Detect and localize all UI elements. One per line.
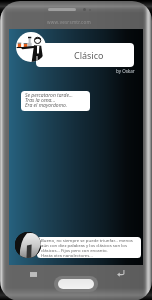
staticText: Bueno, no siempre se puede triunfar... m… <box>41 237 133 258</box>
button[interactable]: Author avatar <box>15 232 41 258</box>
staticText: Se percataron tarde... Tras la cena... E… <box>25 92 73 109</box>
button[interactable]: Recent apps <box>26 267 40 281</box>
button[interactable]: Clásico <box>36 43 134 67</box>
button[interactable]: Oskar avatar <box>16 32 46 62</box>
button[interactable]: Se percataron tarde... Tras la cena... E… <box>21 91 90 111</box>
staticText: www.vesrsmtr.com <box>47 19 91 25</box>
button[interactable]: Bueno, no siempre se puede triunfar... m… <box>37 237 141 258</box>
staticText: by Oskar <box>116 68 135 74</box>
staticText: Clásico <box>74 49 104 61</box>
button[interactable]: Home <box>54 276 98 292</box>
button[interactable]: Back <box>112 265 128 281</box>
